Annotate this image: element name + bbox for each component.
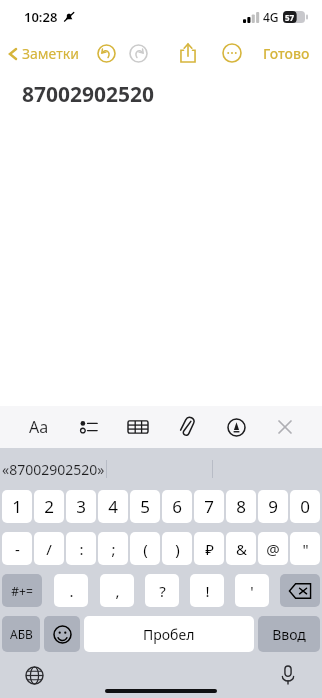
button[interactable]: Dictate: [274, 661, 302, 689]
button[interactable]: /: [34, 532, 64, 565]
button[interactable]: 3: [66, 490, 96, 523]
button[interactable]: АБВ: [2, 616, 40, 652]
button[interactable]: Checklist: [74, 412, 104, 442]
button[interactable]: .: [54, 574, 88, 607]
button[interactable]: 1: [2, 490, 32, 523]
staticText: 87002902520: [22, 80, 155, 109]
staticText: 9: [268, 495, 278, 518]
button[interactable]: 4: [98, 490, 128, 523]
button[interactable]: @: [258, 532, 288, 565]
staticText: 10:28: [24, 8, 58, 26]
staticText: 4G: [263, 9, 279, 25]
staticText: (: [143, 539, 148, 559]
staticText: 6: [172, 495, 182, 518]
button[interactable]: ': [235, 574, 269, 607]
staticText: ,: [115, 581, 120, 601]
staticText: Готово: [263, 44, 310, 63]
button[interactable]: Change language: [20, 661, 48, 689]
button[interactable]: Undo: [93, 40, 119, 66]
staticText: 57: [285, 12, 295, 23]
button[interactable]: ;: [98, 532, 128, 565]
button[interactable]: 7: [194, 490, 224, 523]
staticText: Aa: [29, 416, 49, 438]
staticText: Ввод: [272, 625, 306, 644]
staticText: 3: [76, 495, 86, 518]
button[interactable]: 9: [258, 490, 288, 523]
button[interactable]: 5: [130, 490, 160, 523]
staticText: Заметки: [22, 44, 79, 63]
button[interactable]: Share: [173, 38, 203, 68]
staticText: &: [236, 539, 247, 559]
button[interactable]: 0: [290, 490, 320, 523]
button[interactable]: (: [130, 532, 160, 565]
staticText: ): [175, 539, 180, 559]
button[interactable]: 6: [162, 490, 192, 523]
button[interactable]: -: [2, 532, 32, 565]
staticText: ₽: [205, 539, 214, 559]
staticText: #+=: [11, 583, 33, 599]
staticText: -: [15, 539, 20, 559]
button[interactable]: Пробел: [84, 616, 254, 652]
staticText: /: [46, 539, 52, 559]
staticText: 8: [236, 495, 246, 518]
button[interactable]: Table: [123, 412, 153, 442]
staticText: 4: [108, 495, 118, 518]
button[interactable]: Attach: [172, 412, 202, 442]
staticText: Пробел: [143, 625, 195, 644]
button[interactable]: Text format: [24, 412, 54, 442]
button[interactable]: ": [290, 532, 320, 565]
button[interactable]: 2: [34, 490, 64, 523]
staticText: АБВ: [10, 626, 33, 642]
button[interactable]: Backspace: [280, 574, 320, 607]
button[interactable]: Redo: [125, 40, 151, 66]
staticText: ;: [111, 539, 116, 559]
button[interactable]: Markup: [221, 412, 251, 442]
button[interactable]: Close keyboard: [270, 412, 300, 442]
button[interactable]: Emoji: [44, 616, 80, 652]
staticText: ?: [159, 581, 166, 601]
staticText: 2: [44, 495, 54, 518]
staticText: 7: [204, 495, 214, 518]
button[interactable]: More: [217, 38, 247, 68]
staticText: 0: [300, 495, 310, 518]
button[interactable]: !: [190, 574, 224, 607]
button[interactable]: &: [226, 532, 256, 565]
button[interactable]: ): [162, 532, 192, 565]
button[interactable]: ?: [145, 574, 179, 607]
button[interactable]: ₽: [194, 532, 224, 565]
button[interactable]: Заметки: [6, 44, 79, 63]
button[interactable]: 8: [226, 490, 256, 523]
staticText: ": [302, 539, 309, 559]
staticText: !: [205, 581, 210, 601]
staticText: .: [69, 581, 74, 601]
button[interactable]: Готово: [259, 44, 314, 63]
staticText: :: [79, 539, 84, 559]
staticText: 5: [140, 495, 150, 518]
button[interactable]: :: [66, 532, 96, 565]
button[interactable]: «87002902520»: [2, 460, 105, 479]
staticText: @: [266, 539, 280, 559]
button[interactable]: ,: [100, 574, 134, 607]
button[interactable]: #+=: [2, 574, 42, 607]
staticText: 1: [12, 495, 22, 518]
staticText: ': [250, 581, 254, 601]
button[interactable]: Ввод: [258, 616, 320, 652]
